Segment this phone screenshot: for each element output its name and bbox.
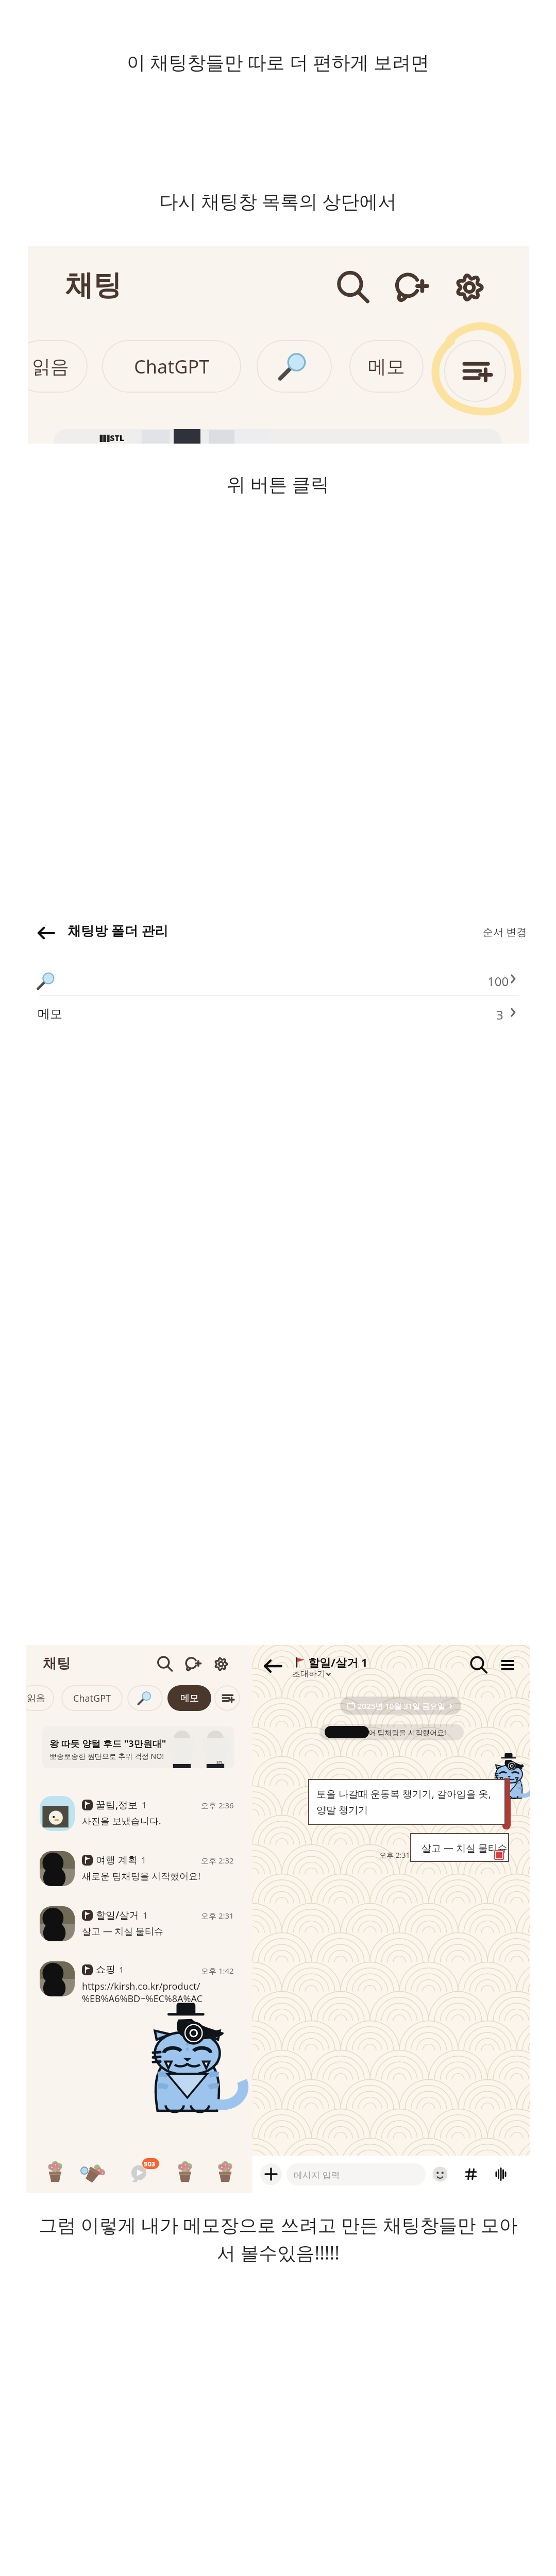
button[interactable]: Add attachment bbox=[260, 2163, 282, 2185]
staticText: 읽음 bbox=[32, 355, 69, 378]
button[interactable]: Back bbox=[38, 924, 55, 942]
staticText: 1 bbox=[143, 1909, 148, 1921]
staticText: 채팅 bbox=[65, 267, 122, 303]
button[interactable]: Search bbox=[156, 1655, 174, 1673]
staticText: 메모 bbox=[38, 1006, 62, 1022]
staticText: 위 버튼 클릭 bbox=[227, 471, 329, 497]
staticText: 이 채팅창들만 따로 더 편하게 보려면 bbox=[127, 49, 429, 75]
staticText: 903 bbox=[144, 2159, 156, 2168]
button[interactable]: Back bbox=[264, 1657, 282, 1675]
staticText: 꿀팁,정보 bbox=[96, 1798, 138, 1811]
staticText: 여행 계획 bbox=[96, 1853, 138, 1867]
button[interactable]: 할일/살거 bbox=[26, 1900, 252, 1955]
staticText: 살고 — 치실 물티슈 bbox=[422, 1841, 508, 1855]
staticText: 메모 bbox=[180, 1692, 199, 1704]
staticText: ⫴⫴⫴STL bbox=[99, 432, 125, 444]
staticText: STL bbox=[216, 1759, 224, 1765]
staticText: 채팅 bbox=[43, 1655, 71, 1672]
staticText: ChatGPT bbox=[73, 1692, 111, 1705]
button[interactable]: 여행 계획 bbox=[26, 1844, 252, 1900]
staticText: 오후 1:42 bbox=[201, 1965, 234, 1976]
button[interactable]: Search folder bbox=[127, 1685, 163, 1711]
staticText: https://kirsh.co.kr/product/ %EB%A6%BD~%… bbox=[82, 1980, 203, 2005]
staticText: 그럼 이렇게 내가 메모장으로 쓰려고 만든 채팅창들만 모아 bbox=[39, 2212, 518, 2238]
button[interactable]: 읽음 bbox=[26, 1685, 54, 1711]
button[interactable]: Hashtag bbox=[462, 2165, 480, 2183]
button[interactable]: ⫴⫴⫴STL bbox=[54, 429, 501, 444]
button[interactable]: Settings bbox=[212, 1655, 230, 1673]
staticText: 할일/살거 bbox=[96, 1908, 139, 1922]
button[interactable]: Manage folders bbox=[444, 340, 506, 402]
staticText: 오후 2:36 bbox=[201, 1800, 234, 1810]
staticText: 새로운 팀채팅을 시작했어요! bbox=[82, 1870, 201, 1883]
staticText: 사진을 보냈습니다. bbox=[82, 1815, 161, 1827]
button[interactable]: Search bbox=[335, 269, 371, 306]
staticText: 3 bbox=[496, 1006, 503, 1023]
button[interactable]: Emoji bbox=[431, 2165, 449, 2183]
button[interactable]: 메모 bbox=[167, 1685, 211, 1711]
button[interactable]: New chat bbox=[184, 1655, 201, 1673]
staticText: 순서 변경 bbox=[483, 925, 527, 939]
staticText: 오후 2:32 bbox=[201, 1855, 234, 1866]
button[interactable]: ChatGPT bbox=[61, 1685, 123, 1711]
staticText: 할일/살거 1 bbox=[308, 1654, 368, 1670]
button[interactable]: 100 bbox=[0, 962, 556, 995]
button[interactable]: 메모 bbox=[349, 340, 424, 393]
button[interactable]: 메모 bbox=[0, 996, 556, 1029]
staticText: 오후 2:31 bbox=[201, 1910, 234, 1921]
button[interactable]: Manage folders bbox=[214, 1685, 240, 1711]
button[interactable]: 읽음 bbox=[28, 340, 88, 393]
button[interactable]: Voice message bbox=[492, 2165, 510, 2183]
button[interactable]: Menu bbox=[498, 1655, 517, 1675]
button[interactable]: 초대하기 bbox=[292, 1669, 332, 1679]
staticText: 살고 — 치실 물티슈 bbox=[82, 1925, 164, 1938]
button[interactable]: Search folder bbox=[257, 340, 332, 393]
button[interactable]: Settings bbox=[451, 269, 487, 306]
staticText: 1 bbox=[142, 1799, 147, 1811]
button[interactable]: 꿀팁,정보 bbox=[26, 1789, 252, 1844]
staticText: 2025년 10월 31일 금요일 bbox=[358, 1701, 446, 1711]
button[interactable]: 2025년 10월 31일 금요일 bbox=[340, 1697, 461, 1715]
staticText: ChatGPT bbox=[134, 354, 210, 379]
staticText: 채팅방 폴더 관리 bbox=[68, 921, 169, 940]
button[interactable]: New chat bbox=[393, 269, 429, 306]
button[interactable]: Search bbox=[469, 1655, 488, 1675]
staticText: 읽음 bbox=[27, 1692, 45, 1704]
staticText: 쇼핑 bbox=[96, 1963, 115, 1976]
staticText: 메모 bbox=[368, 355, 405, 378]
button[interactable]: 순서 변경 bbox=[481, 923, 529, 940]
staticText: 1 bbox=[119, 1964, 124, 1976]
staticText: 1 bbox=[141, 1854, 146, 1866]
staticText: 오후 2:31 bbox=[379, 1850, 410, 1860]
staticText: 서 볼수있음!!!!! bbox=[217, 2240, 340, 2265]
staticText: 100 bbox=[487, 973, 509, 990]
staticText: 메시지 입력 bbox=[294, 2169, 340, 2181]
staticText: 방장이 되어 팀채팅을 시작했어요! bbox=[338, 1727, 446, 1737]
staticText: 초대하기 bbox=[292, 1669, 325, 1679]
staticText: 뽀송뽀송한 원단으로 추위 걱정 NO! bbox=[49, 1751, 164, 1761]
button[interactable]: ChatGPT bbox=[102, 340, 241, 393]
staticText: 다시 채팅창 목록의 상단에서 bbox=[159, 189, 397, 214]
button[interactable]: 쇼핑 bbox=[26, 1955, 252, 2010]
staticText: 왕 따듯 양털 후드 "3만원대" bbox=[49, 1737, 166, 1750]
button[interactable]: 왕 따듯 양털 후드 "3만원대" bbox=[42, 1726, 234, 1768]
staticText: 토올 나갈때 운동복 챙기기, 갈아입을 옷, 양말 챙기기 bbox=[316, 1787, 498, 1816]
